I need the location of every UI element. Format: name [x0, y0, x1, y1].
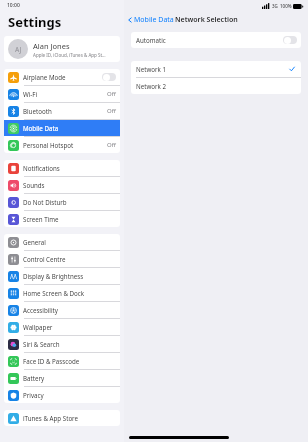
button[interactable]: Network 1: [131, 61, 301, 77]
button[interactable]: Mobile Data: [127, 15, 174, 25]
button[interactable]: Personal Hotspot: [4, 137, 120, 153]
staticText: iTunes & App Store: [23, 414, 116, 422]
button[interactable]: Display & Brightness: [4, 268, 120, 284]
button[interactable]: Mobile Data: [4, 120, 120, 136]
button[interactable]: General: [4, 234, 120, 250]
staticText: Automatic: [136, 36, 166, 44]
button[interactable]: AJ: [4, 36, 120, 62]
button[interactable]: Battery: [4, 370, 120, 386]
staticText: Accessibility: [23, 306, 116, 314]
staticText: Notifications: [23, 164, 116, 172]
button[interactable]: Screen Time: [4, 211, 120, 227]
staticText: Off: [107, 90, 116, 98]
button[interactable]: Toggle: [283, 36, 297, 44]
staticText: Apple ID, iCloud, iTunes & App St…: [33, 52, 106, 58]
staticText: Mobile Data: [23, 124, 116, 132]
staticText: AJ: [15, 45, 22, 54]
staticText: Alan Jones: [33, 41, 70, 51]
button[interactable]: Airplane Mode: [4, 69, 120, 85]
staticText: Battery: [23, 374, 116, 382]
button[interactable]: Network 2: [131, 78, 301, 94]
staticText: Off: [107, 107, 116, 115]
staticText: Network Selection: [175, 15, 238, 25]
staticText: Settings: [8, 13, 62, 31]
button[interactable]: Toggle: [102, 73, 116, 81]
button[interactable]: Home Screen & Dock: [4, 285, 120, 301]
button[interactable]: Notifications: [4, 160, 120, 176]
button[interactable]: Face ID & Passcode: [4, 353, 120, 369]
staticText: Bluetooth: [23, 107, 107, 115]
staticText: General: [23, 238, 116, 246]
staticText: Wallpaper: [23, 323, 116, 331]
staticText: Mobile Data: [134, 15, 174, 25]
staticText: Personal Hotspot: [23, 141, 107, 149]
button[interactable]: Sounds: [4, 177, 120, 193]
button[interactable]: Wallpaper: [4, 319, 120, 335]
button[interactable]: Automatic: [131, 32, 301, 48]
staticText: 10:00: [7, 2, 20, 9]
staticText: Off: [107, 141, 116, 149]
button[interactable]: Wi-Fi: [4, 86, 120, 102]
staticText: Home Screen & Dock: [23, 289, 116, 297]
staticText: Face ID & Passcode: [23, 357, 116, 365]
button[interactable]: Bluetooth: [4, 103, 120, 119]
staticText: Network 2: [136, 82, 295, 90]
button[interactable]: Control Centre: [4, 251, 120, 267]
button[interactable]: Privacy: [4, 387, 120, 403]
button[interactable]: Accessibility: [4, 302, 120, 318]
staticText: Siri & Search: [23, 340, 116, 348]
staticText: 3G: [272, 3, 278, 9]
staticText: Control Centre: [23, 255, 116, 263]
staticText: Wi-Fi: [23, 90, 107, 98]
staticText: Display & Brightness: [23, 272, 116, 280]
staticText: Sounds: [23, 181, 116, 189]
button[interactable]: iTunes & App Store: [4, 410, 120, 426]
staticText: Screen Time: [23, 215, 116, 223]
staticText: Network 1: [136, 65, 289, 73]
button[interactable]: Siri & Search: [4, 336, 120, 352]
staticText: 100%: [280, 3, 292, 9]
staticText: Airplane Mode: [23, 73, 102, 81]
staticText: Privacy: [23, 391, 116, 399]
staticText: Do Not Disturb: [23, 198, 116, 206]
button[interactable]: Do Not Disturb: [4, 194, 120, 210]
